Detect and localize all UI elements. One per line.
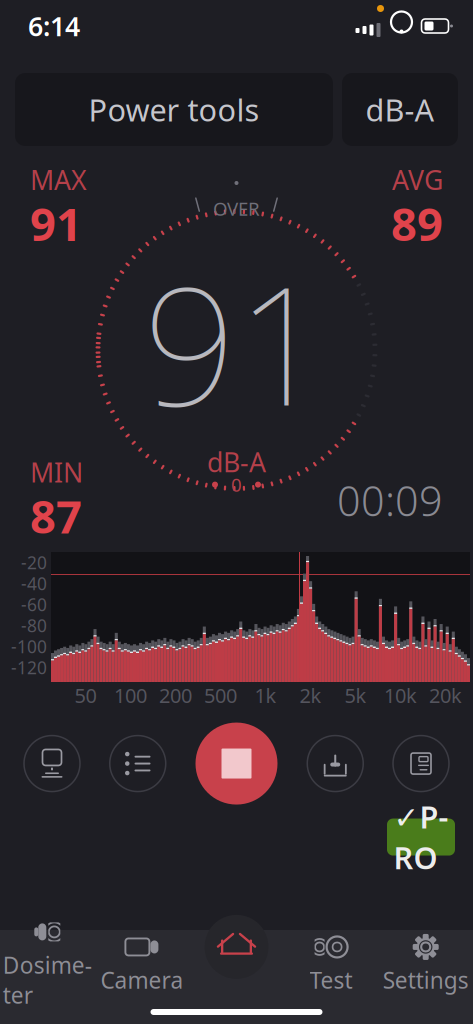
staticText: -100 bbox=[11, 635, 47, 658]
staticText: 6:14 bbox=[28, 8, 80, 44]
staticText: -120 bbox=[11, 656, 47, 679]
button[interactable]: Stop recording bbox=[195, 723, 277, 805]
button[interactable]: Save bbox=[307, 736, 363, 792]
staticText: MIN bbox=[30, 454, 83, 490]
staticText: 20k bbox=[429, 682, 462, 709]
button[interactable]: Test bbox=[284, 932, 378, 994]
button[interactable]: Report bbox=[393, 736, 449, 792]
staticText: 10k bbox=[384, 682, 417, 709]
staticText: 5k bbox=[344, 682, 366, 709]
button[interactable]: Calibration bbox=[24, 736, 80, 792]
staticText: dB-A bbox=[365, 89, 434, 130]
staticText: 87 bbox=[30, 486, 82, 546]
button[interactable]: Dosimeter bbox=[0, 932, 95, 994]
button[interactable]: Power tools bbox=[15, 73, 333, 146]
staticText: ✓PRO bbox=[393, 796, 448, 878]
staticText: Camera bbox=[100, 965, 183, 995]
staticText: MAX bbox=[30, 162, 87, 197]
staticText: 91 bbox=[30, 193, 82, 254]
button[interactable]: dB-A bbox=[342, 73, 458, 146]
staticText: AVG bbox=[392, 162, 443, 197]
staticText: dB-A bbox=[207, 444, 266, 480]
staticText: 91 bbox=[143, 234, 329, 450]
staticText: 0 bbox=[231, 472, 242, 497]
button[interactable]: Settings bbox=[378, 932, 473, 994]
staticText: 100 bbox=[114, 682, 147, 709]
staticText: 89 bbox=[391, 193, 443, 254]
staticText: 200 bbox=[159, 682, 192, 709]
staticText: -20 bbox=[21, 551, 47, 574]
button[interactable] bbox=[189, 932, 284, 994]
button[interactable]: Camera bbox=[95, 932, 189, 994]
staticText: -60 bbox=[21, 593, 47, 616]
staticText: 00:09 bbox=[337, 473, 443, 528]
staticText: 2k bbox=[299, 682, 321, 709]
staticText: Power tools bbox=[88, 89, 259, 130]
staticText: -40 bbox=[21, 572, 47, 595]
staticText: OVER bbox=[213, 196, 260, 221]
staticText: Dosimeter bbox=[3, 950, 92, 1010]
staticText: 1k bbox=[254, 682, 276, 709]
staticText: -80 bbox=[21, 614, 47, 637]
button[interactable]: Measurements bbox=[110, 736, 166, 792]
button[interactable]: ✓PRO bbox=[387, 819, 455, 856]
staticText: 50 bbox=[74, 682, 96, 709]
staticText: Settings bbox=[383, 965, 469, 995]
staticText: 500 bbox=[204, 682, 237, 709]
staticText: Test bbox=[310, 965, 353, 995]
